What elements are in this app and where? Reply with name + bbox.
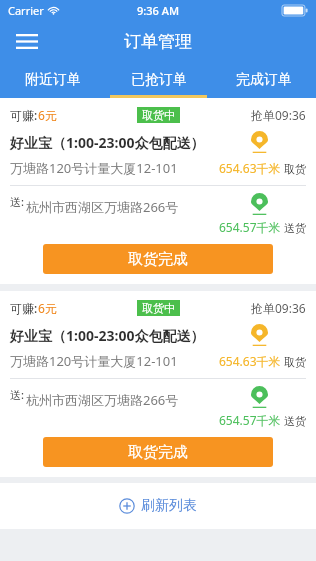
staticText: 抢单09:36 — [251, 300, 306, 316]
staticText: 送货 — [284, 414, 306, 428]
staticText: 抢单09:36 — [251, 107, 306, 123]
staticText: 好业宝（1:00-23:00众包配送） — [10, 326, 205, 345]
button[interactable]: 取货完成 — [43, 244, 273, 274]
staticText: 654.63千米 — [219, 160, 281, 176]
staticText: 送: — [10, 387, 24, 402]
staticText: 送货 — [284, 221, 306, 235]
staticText: 可赚: — [10, 107, 38, 123]
button[interactable]: 完成订单 — [211, 62, 316, 98]
staticText: 完成订单 — [236, 71, 292, 89]
staticText: 杭州市西湖区万塘路266号 — [26, 391, 179, 409]
button[interactable]: 附近订单 — [0, 62, 106, 98]
staticText: 654.57千米 — [219, 219, 281, 235]
staticText: 附近订单 — [25, 71, 81, 89]
staticText: 9:36 AM — [137, 3, 180, 18]
button[interactable]: 可赚: — [0, 98, 316, 284]
staticText: 可赚: — [10, 300, 38, 316]
button[interactable]: 可赚: — [0, 291, 316, 477]
staticText: 取货 — [284, 355, 306, 369]
staticText: 6元 — [38, 300, 57, 316]
button[interactable]: 刷新列表 — [0, 483, 316, 529]
staticText: 取货完成 — [128, 443, 188, 462]
staticText: 取货中 — [142, 301, 175, 315]
button[interactable]: 已抢订单 — [106, 62, 211, 98]
button[interactable]: 取货完成 — [43, 437, 273, 467]
staticText: 已抢订单 — [131, 71, 187, 89]
staticText: 刷新列表 — [141, 497, 197, 515]
staticText: 取货 — [284, 162, 306, 176]
staticText: 万塘路120号计量大厦12-101 — [10, 159, 178, 177]
staticText: Carrier — [8, 3, 44, 18]
staticText: 万塘路120号计量大厦12-101 — [10, 352, 178, 370]
staticText: 订单管理 — [124, 31, 192, 52]
staticText: 好业宝（1:00-23:00众包配送） — [10, 133, 205, 152]
staticText: 杭州市西湖区万塘路266号 — [26, 198, 179, 216]
staticText: 6元 — [38, 107, 57, 123]
staticText: 取货完成 — [128, 250, 188, 269]
button[interactable]: Menu — [10, 24, 44, 58]
staticText: 取货中 — [142, 108, 175, 122]
staticText: 654.57千米 — [219, 412, 281, 428]
staticText: 送: — [10, 194, 24, 209]
staticText: 654.63千米 — [219, 353, 281, 369]
